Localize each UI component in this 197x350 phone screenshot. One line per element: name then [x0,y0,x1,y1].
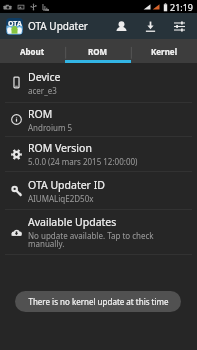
button[interactable]: Device [0,63,197,103]
staticText: Kernel [151,46,178,57]
button[interactable]: ROM [65,39,131,63]
staticText: AIUMALiqE2D50x [28,193,94,204]
button[interactable]: Account [107,13,136,39]
staticText: OTA Updater [28,19,88,33]
button[interactable]: About [0,39,65,63]
staticText: 5.0.0 (24 mars 2015 12:00:00) [28,156,138,167]
staticText: About [20,46,45,57]
button[interactable]: There is no kernel update at this time [15,291,181,312]
staticText: OTA Updater ID [28,178,105,192]
staticText: Available Updates [28,215,117,229]
staticText: ROM Version [28,141,92,155]
button[interactable]: Download [136,13,165,39]
button[interactable]: OTA Updater ID [0,172,197,210]
button[interactable]: Available Updates [0,210,197,255]
staticText: Androium 5 [28,122,73,133]
staticText: ROM [88,46,108,57]
button[interactable]: Kernel [131,39,197,63]
staticText: There is no kernel update at this time [28,296,169,307]
staticText: 21:19 [170,1,194,13]
staticText: acer_e3 [28,85,57,96]
staticText: ROM [28,107,53,121]
button[interactable]: Settings [165,13,194,39]
button[interactable]: ROM Version [0,137,197,172]
staticText: Device [28,70,61,84]
staticText: OTA [8,19,22,29]
staticText: No update available. Tap to check manual… [28,230,154,249]
button[interactable]: ROM [0,103,197,137]
